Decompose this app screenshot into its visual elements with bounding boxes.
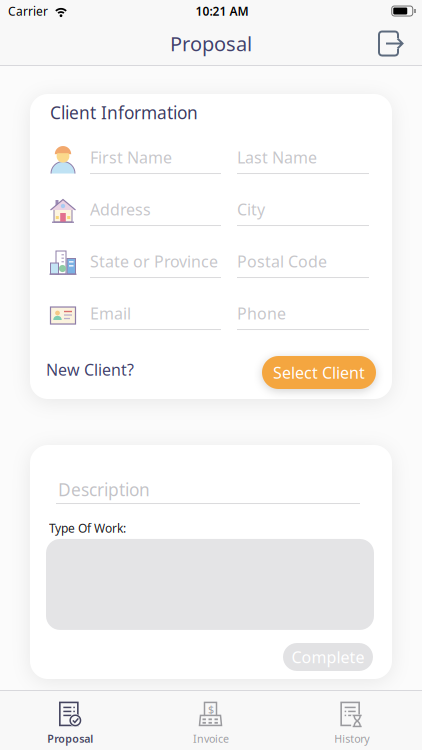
staticText: 10:21 AM [195,3,248,19]
staticText: Phone [237,303,286,324]
staticText: First Name [90,147,172,168]
staticText: Carrier [8,3,48,19]
staticText: $ [208,702,214,716]
staticText: Select Client [273,362,365,383]
staticText: Address [90,199,151,220]
staticText: State or Province [90,251,218,272]
staticText: Complete [291,646,364,668]
button[interactable]: $ [141,695,281,746]
staticText: Type Of Work: [49,520,126,536]
staticText: Description [58,478,150,501]
button[interactable]: New Client? [46,362,134,383]
staticText: New Client? [46,359,134,380]
staticText: Last Name [237,147,317,168]
button[interactable]: Complete [283,643,373,671]
staticText: Postal Code [237,251,327,272]
staticText: Proposal [47,731,93,746]
button[interactable]: Select Client [262,356,376,389]
staticText: Client Information [50,101,198,124]
staticText: Proposal [170,30,252,57]
staticText: Email [90,303,131,324]
staticText: History [334,731,369,746]
button[interactable]: Proposal [0,695,141,746]
button[interactable]: Sign Out [377,30,422,57]
staticText: Invoice [193,731,229,746]
button[interactable]: History [281,695,422,746]
staticText: City [237,199,265,220]
